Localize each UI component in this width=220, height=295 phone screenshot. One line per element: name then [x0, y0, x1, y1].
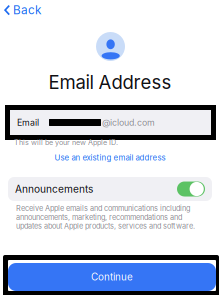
staticText: @icloud.com: [102, 117, 155, 128]
staticText: Email Address: [48, 71, 171, 93]
button[interactable]: Continue: [3, 255, 219, 295]
staticText: Receive Apple emails and communications …: [16, 204, 195, 231]
button[interactable]: Announcements: [8, 177, 212, 201]
staticText: Email: [17, 117, 39, 128]
staticText: Back: [13, 3, 41, 17]
button[interactable]: Use an existing email address: [49, 151, 170, 164]
button[interactable]: Back: [0, 0, 49, 22]
staticText: Use an existing email address: [54, 153, 165, 162]
staticText: This will be your new Apple ID.: [14, 138, 118, 147]
staticText: Continue: [91, 271, 133, 283]
staticText: Announcements: [15, 183, 93, 195]
